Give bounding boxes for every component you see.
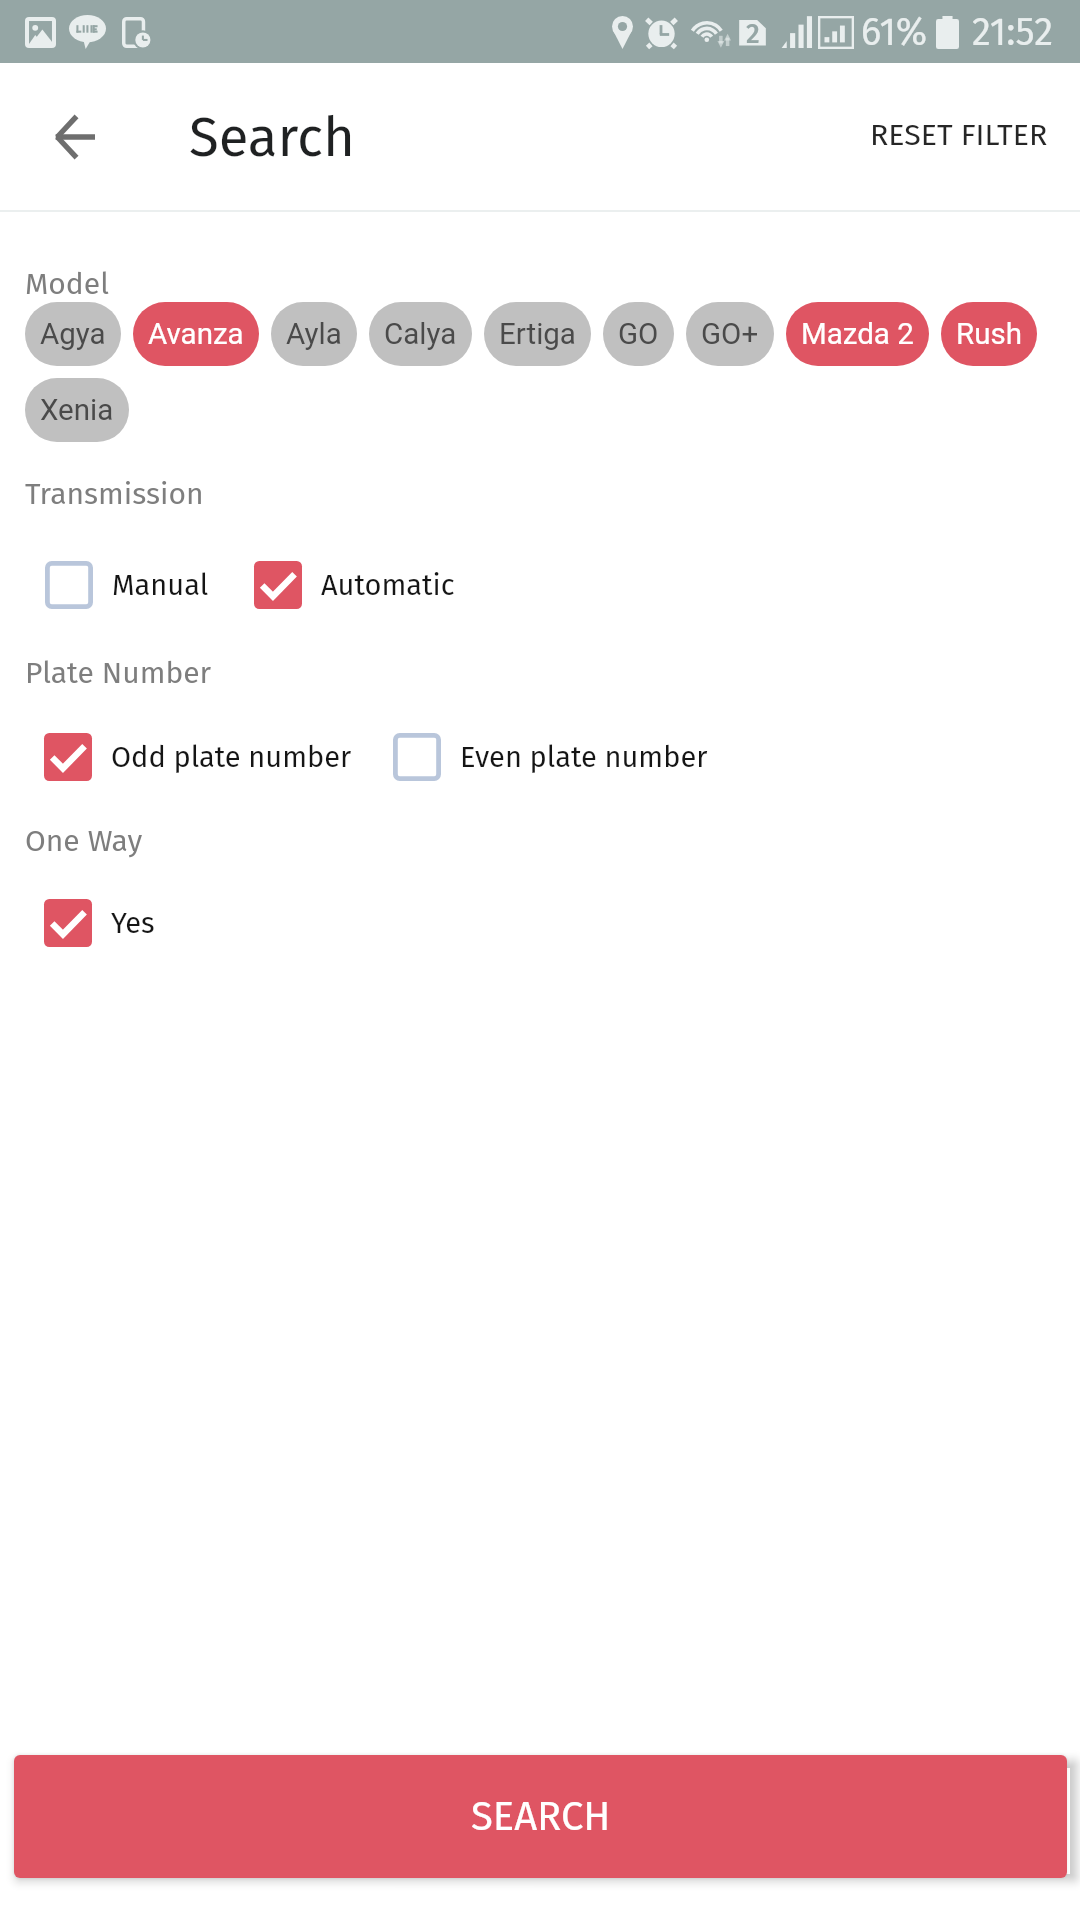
staticText: 21:52 (972, 9, 1053, 55)
button[interactable]: Odd plate number (44, 733, 352, 781)
staticText: Model (25, 266, 109, 302)
staticText: 61% (861, 9, 928, 55)
staticText: Rush (956, 317, 1022, 352)
button[interactable]: Xenia (25, 378, 129, 442)
button[interactable]: SEARCH (14, 1755, 1067, 1878)
button[interactable]: Back (32, 95, 116, 179)
staticText: GO (618, 317, 659, 352)
button[interactable]: Automatic (254, 561, 455, 609)
staticText: Automatic (321, 568, 455, 603)
staticText: Plate Number (25, 655, 212, 691)
staticText: Manual (112, 568, 209, 603)
button[interactable]: GO+ (686, 302, 774, 366)
button[interactable]: Mazda 2 (786, 302, 929, 366)
button[interactable]: Manual (45, 561, 209, 609)
staticText: Yes (111, 906, 155, 941)
staticText: Even plate number (460, 740, 708, 775)
staticText: Agya (40, 317, 106, 352)
button[interactable]: Even plate number (393, 733, 708, 781)
staticText: Mazda 2 (801, 317, 914, 352)
button[interactable]: Ayla (271, 302, 357, 366)
staticText: SEARCH (471, 1793, 611, 1841)
button[interactable]: GO (603, 302, 674, 366)
staticText: GO+ (701, 317, 759, 352)
button[interactable]: RESET FILTER (850, 95, 1068, 175)
staticText: 2 (746, 18, 760, 49)
staticText: Xenia (40, 393, 114, 428)
button[interactable]: Rush (941, 302, 1037, 366)
staticText: Ertiga (499, 317, 576, 352)
button[interactable]: Agya (25, 302, 121, 366)
staticText: Odd plate number (111, 740, 352, 775)
staticText: Ayla (286, 317, 342, 352)
button[interactable]: Calya (369, 302, 472, 366)
staticText: Avanza (148, 317, 244, 352)
staticText: One Way (25, 823, 143, 859)
staticText: Search (189, 105, 355, 170)
staticText: RESET FILTER (870, 117, 1048, 153)
staticText: Calya (384, 317, 457, 352)
staticText: Transmission (25, 476, 204, 512)
button[interactable]: Yes (44, 899, 155, 947)
button[interactable]: Ertiga (484, 302, 591, 366)
button[interactable]: Avanza (133, 302, 259, 366)
